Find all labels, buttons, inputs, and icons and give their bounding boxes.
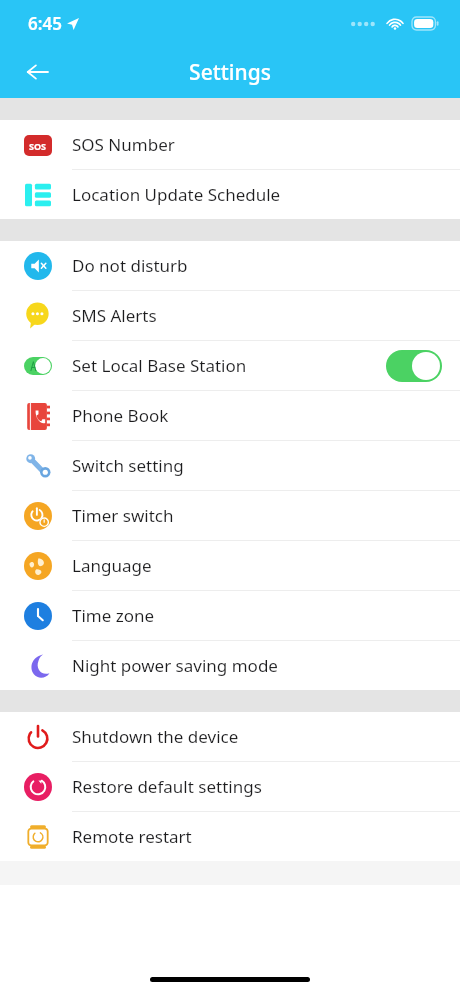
button[interactable]: Timer switch (0, 491, 460, 540)
staticText: 6:45 (28, 12, 62, 35)
staticText: Time zone (72, 604, 155, 627)
staticText: Settings (189, 58, 271, 87)
button[interactable]: Location Update Schedule (0, 170, 460, 219)
staticText: Restore default settings (72, 775, 262, 798)
button[interactable]: SOS (0, 120, 460, 169)
button[interactable]: Set Local Base Station toggle (386, 350, 442, 382)
staticText: Switch setting (72, 454, 184, 477)
staticText: Shutdown the device (72, 725, 239, 748)
button[interactable]: Language (0, 541, 460, 590)
button[interactable]: Time zone (0, 591, 460, 640)
staticText: SMS Alerts (72, 304, 157, 327)
staticText: Timer switch (72, 504, 174, 527)
staticText: Night power saving mode (72, 654, 278, 677)
staticText: Set Local Base Station (72, 354, 247, 377)
button[interactable]: Night power saving mode (0, 641, 460, 690)
staticText: Do not disturb (72, 254, 188, 277)
button[interactable]: Back (14, 49, 60, 95)
button[interactable]: Do not disturb (0, 241, 460, 290)
staticText: Language (72, 554, 152, 577)
button[interactable]: Shutdown the device (0, 712, 460, 761)
button[interactable]: Set Local Base Station (0, 341, 460, 390)
button[interactable]: Restore default settings (0, 762, 460, 811)
button[interactable]: Switch setting (0, 441, 460, 490)
staticText: Location Update Schedule (72, 183, 281, 206)
staticText: Remote restart (72, 825, 192, 848)
staticText: SOS (29, 140, 47, 152)
button[interactable]: Remote restart (0, 812, 460, 861)
button[interactable]: SMS Alerts (0, 291, 460, 340)
staticText: SOS Number (72, 133, 175, 156)
staticText: Phone Book (72, 404, 169, 427)
button[interactable]: Phone Book (0, 391, 460, 440)
